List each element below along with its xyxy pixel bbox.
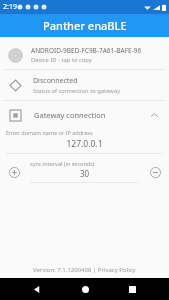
staticText: 2:19 [3,2,17,12]
staticText: ANDROID-9BED-FC9B-7A61-BAFE-96 [31,46,142,55]
button[interactable]: Decrease [147,164,163,180]
button[interactable]: Back [27,279,47,299]
button[interactable]: Enter domain name or IP address [0,129,169,154]
staticText: 127.0.0.1 [6,138,163,150]
other: Collapse [150,111,159,120]
staticText: Status of connection to gateway [33,87,121,95]
button[interactable]: Home [75,279,95,299]
staticText: sync interval (in seconds) [30,160,95,167]
button[interactable]: Gateway [0,101,169,129]
button[interactable]: Increase [6,164,22,180]
staticText: Gateway connection [34,110,106,120]
staticText: Device ID - tap to copy [31,56,92,64]
staticText: 30 [30,168,139,179]
other: Connection status [10,80,21,91]
staticText: Panther enaBLE [43,18,127,33]
button[interactable]: Version: 7.1.1200408 | Privacy Policy [0,262,169,278]
staticText: Enter domain name or IP address [6,129,93,136]
button[interactable]: Device fingerprint [0,41,169,69]
button[interactable]: Connection status [0,70,169,100]
other: Gateway [10,110,21,121]
staticText: Disconnected [33,76,78,86]
other: Device fingerprint [8,48,23,63]
button[interactable]: Recents [122,279,142,299]
staticText: Version: 7.1.1200408 | Privacy Policy [33,266,136,274]
